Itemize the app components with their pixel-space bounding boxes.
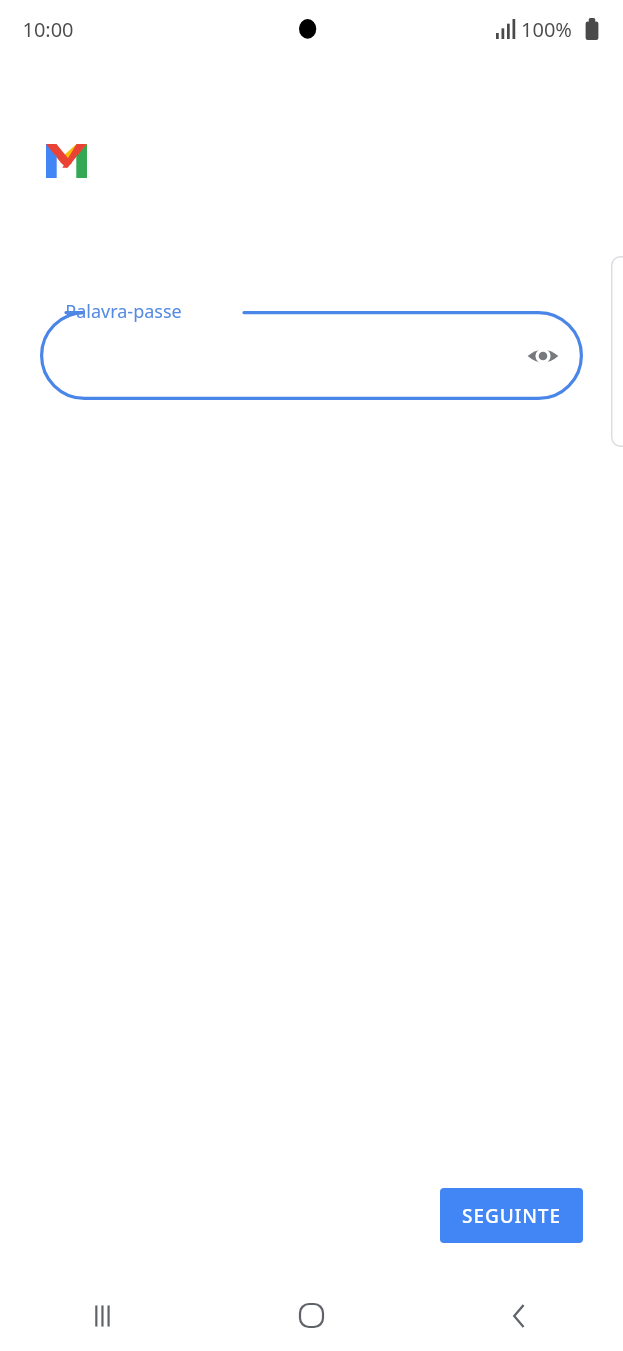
staticText: 10:00 (22, 16, 74, 43)
staticText: 100% (521, 16, 572, 43)
button[interactable]: Recents (0, 1280, 207, 1351)
button[interactable]: SEGUINTE (440, 1188, 583, 1243)
button[interactable]: Palavra-passe (40, 311, 583, 400)
button[interactable] (611, 256, 623, 447)
button[interactable]: Mostrar palavra-passe (520, 333, 566, 379)
staticText: SEGUINTE (462, 1203, 561, 1229)
staticText: Palavra-passe (65, 299, 182, 324)
button[interactable]: Back (415, 1280, 623, 1351)
button[interactable]: Home (207, 1280, 415, 1351)
